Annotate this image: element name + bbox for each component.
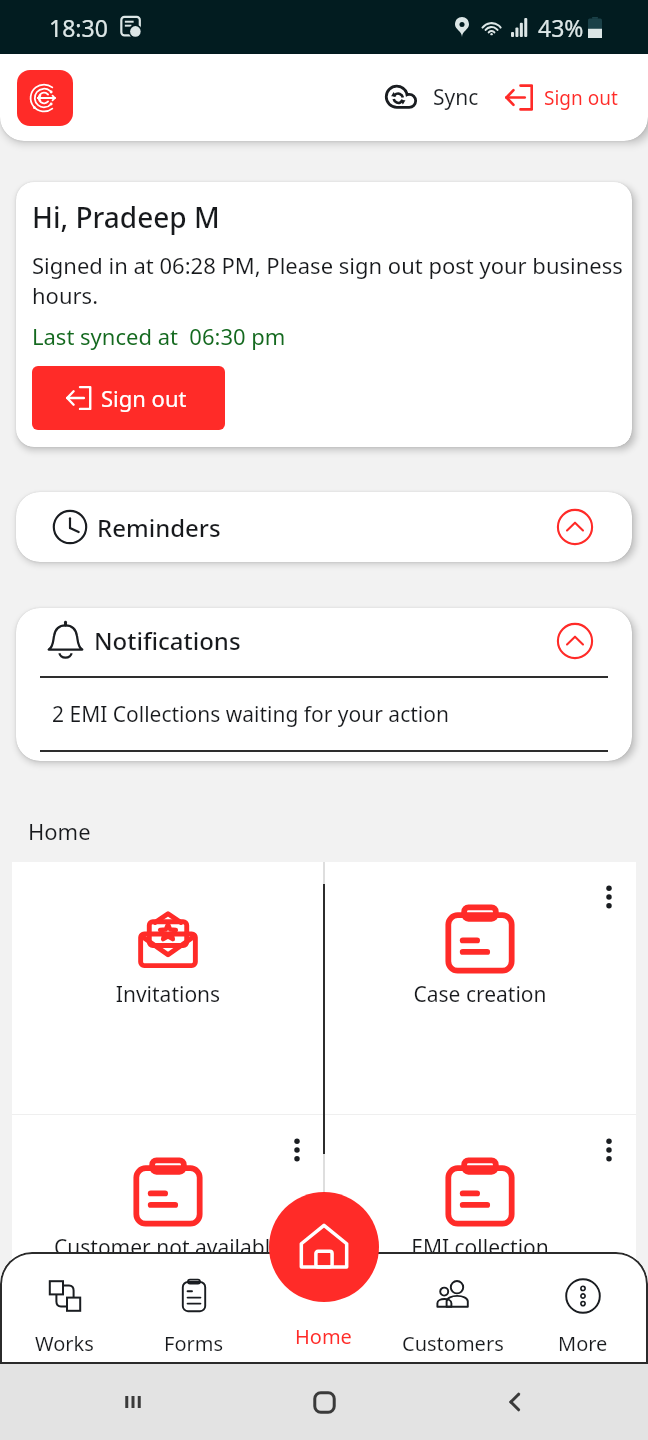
staticText: Invitations (12, 980, 324, 1009)
staticText: 2 EMI Collections waiting for your actio… (52, 700, 449, 729)
staticText: EMI collection (324, 1233, 636, 1262)
button[interactable]: Customer not available (12, 1115, 324, 1368)
button[interactable]: More options (596, 884, 622, 910)
button[interactable]: Back (492, 1379, 538, 1425)
staticText: Customer not available (12, 1233, 324, 1262)
staticText: 18:30 (49, 12, 108, 43)
staticText: Sync (433, 83, 479, 112)
button[interactable]: More options (596, 1137, 622, 1163)
button[interactable]: Reminders (16, 492, 632, 562)
button[interactable]: Forms (129, 1252, 258, 1364)
button[interactable]: Recent apps (110, 1379, 156, 1425)
staticText: Reminders (97, 511, 221, 544)
button[interactable]: Case creation (324, 862, 636, 1114)
staticText: Signed in at 06:28 PM, Please sign out p… (32, 250, 624, 311)
button[interactable]: Collapse notifications (556, 622, 594, 660)
staticText: Case creation (324, 980, 636, 1009)
staticText: Works (35, 1330, 94, 1357)
button[interactable]: Home (269, 1192, 379, 1302)
staticText: Last synced at 06:30 pm (32, 321, 286, 351)
button[interactable]: Customers (388, 1252, 518, 1364)
staticText: Notifications (94, 624, 241, 657)
button[interactable]: Home (301, 1379, 347, 1425)
staticText: Hi, Pradeep M (32, 198, 220, 236)
staticText: Home (295, 1323, 352, 1350)
button[interactable]: Invitations (12, 862, 324, 1114)
button[interactable]: Home (258, 1252, 388, 1364)
button[interactable]: Sign out (32, 366, 225, 430)
button[interactable]: Sign out (501, 74, 620, 121)
staticText: Sign out (544, 85, 618, 111)
staticText: Sign out (101, 383, 187, 413)
button[interactable]: Collapse reminders (556, 508, 594, 546)
button[interactable]: More options (284, 1137, 310, 1163)
button[interactable]: Works (0, 1252, 129, 1364)
button[interactable]: 2 EMI Collections waiting for your actio… (16, 678, 632, 750)
staticText: 43% (538, 12, 584, 43)
button[interactable]: More (518, 1252, 648, 1364)
button[interactable]: Sync (380, 73, 481, 122)
staticText: Customers (402, 1330, 504, 1357)
button[interactable]: Notifications (16, 608, 632, 676)
button[interactable]: EMI collection (324, 1115, 636, 1368)
staticText: Home (28, 816, 91, 846)
staticText: Forms (164, 1330, 224, 1357)
button[interactable]: App logo (17, 70, 73, 126)
staticText: More (558, 1330, 608, 1357)
